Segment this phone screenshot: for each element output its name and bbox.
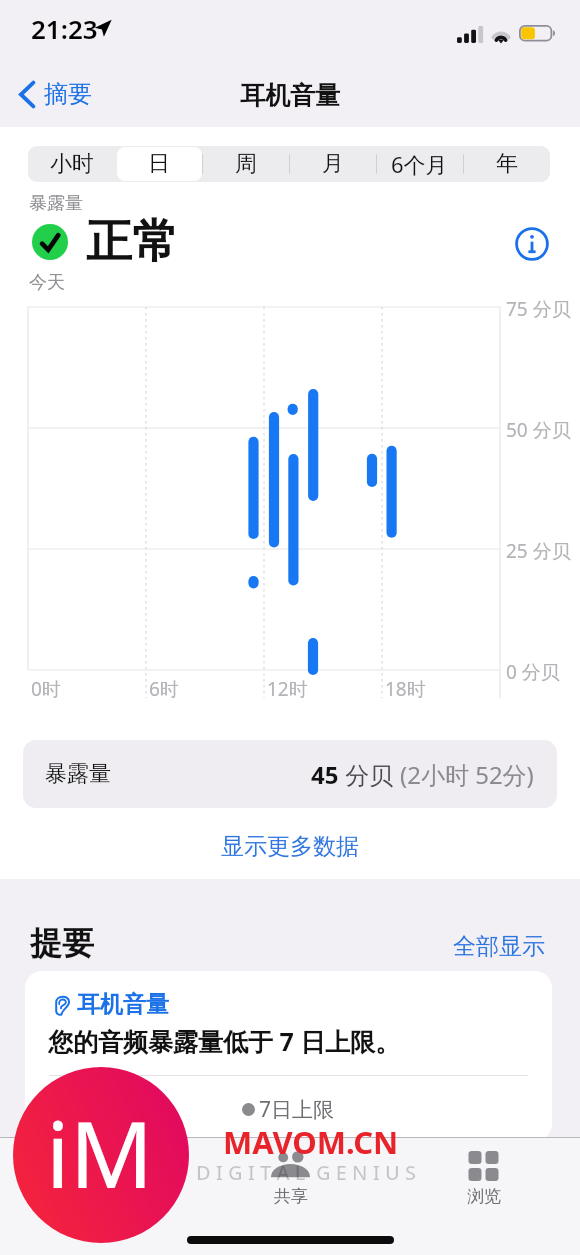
staticText: 共享	[274, 1186, 308, 1207]
staticText: 分贝	[339, 758, 400, 791]
staticText: 浏览	[467, 1186, 501, 1207]
staticText: 12时	[267, 676, 308, 702]
staticText: 全部显示	[453, 932, 545, 961]
staticText: 提要	[30, 923, 94, 963]
staticText: 显示更多数据	[221, 832, 359, 861]
staticText: 月	[322, 150, 344, 178]
button[interactable]: 小时	[28, 146, 115, 182]
staticText: 年	[496, 150, 518, 178]
staticText: 摘要	[44, 79, 92, 109]
staticText: 耳机音量	[240, 80, 340, 111]
button[interactable]: 周	[202, 146, 289, 182]
button[interactable]: 全部显示	[453, 929, 545, 963]
staticText: 0时	[31, 676, 61, 702]
staticText: 您的音频暴露量低于 7 日上限。	[48, 1024, 401, 1058]
button[interactable]: 耳机音量	[25, 971, 552, 1141]
staticText: 摘要	[80, 1186, 114, 1207]
staticText: D I G I T A L G E N I U S	[196, 1159, 416, 1186]
button[interactable]: 摘要	[0, 1137, 194, 1207]
button[interactable]: 共享	[194, 1137, 387, 1207]
staticText: 今天	[29, 271, 65, 294]
button[interactable]: 摘要	[19, 74, 92, 114]
staticText: 75 分贝	[506, 296, 571, 322]
staticText: 21:23	[31, 11, 98, 46]
staticText: 18时	[385, 676, 426, 702]
button[interactable]: 6个月	[376, 146, 463, 182]
staticText: (2小时 52分)	[400, 758, 534, 791]
staticText: 小时	[50, 150, 94, 178]
staticText: 暴露量	[29, 192, 83, 215]
button[interactable]: 显示更多数据	[0, 824, 580, 868]
staticText: 日	[148, 150, 170, 178]
staticText: 6个月	[391, 149, 448, 179]
staticText: iM	[46, 1090, 154, 1215]
button[interactable]: 年	[463, 146, 550, 182]
button[interactable]: 浏览	[387, 1137, 580, 1207]
staticText: 25 分贝	[506, 538, 571, 564]
staticText: 6时	[149, 676, 179, 702]
button[interactable]: 信息	[512, 224, 552, 264]
staticText: 0 分贝	[506, 659, 560, 685]
staticText: 暴露量	[45, 760, 111, 788]
staticText: 正常	[86, 213, 178, 271]
staticText: MAVOM.CN	[223, 1121, 399, 1163]
staticText: 50 分贝	[506, 417, 571, 443]
button[interactable]: 日	[115, 146, 202, 182]
staticText: 周	[235, 150, 257, 178]
staticText: 耳机音量	[77, 990, 169, 1019]
staticText: 45	[311, 758, 339, 791]
button[interactable]: 月	[289, 146, 376, 182]
staticText: 7日上限	[259, 1095, 335, 1124]
button[interactable]: 暴露量	[23, 740, 557, 808]
